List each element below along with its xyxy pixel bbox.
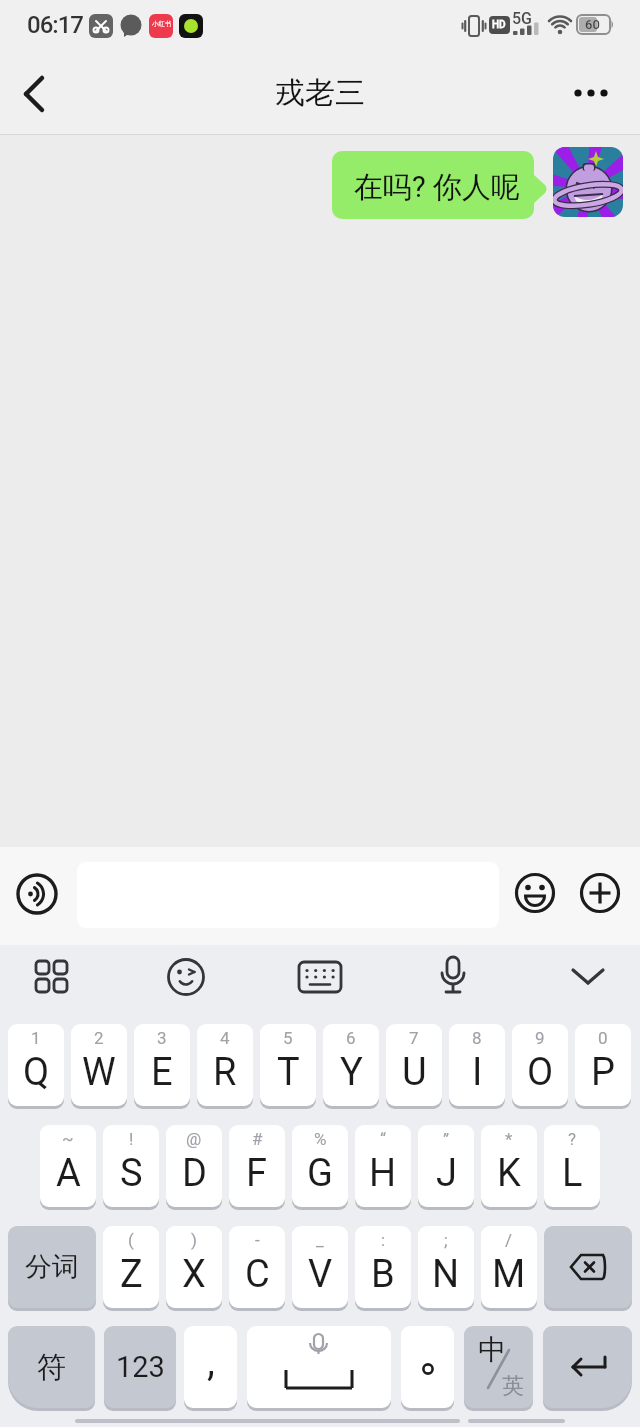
button[interactable]: ~ [40,1125,96,1207]
button[interactable]: % [292,1125,348,1207]
staticText: 06:17 [27,11,83,39]
staticText: 60 [585,17,600,32]
staticText: E [151,1050,173,1095]
button[interactable] [437,957,469,997]
staticText: O [527,1050,554,1095]
staticText: 2 [94,1028,104,1048]
button[interactable]: - [229,1226,285,1308]
button[interactable] [16,873,58,915]
staticText: 6 [346,1028,356,1048]
button[interactable]: * [481,1125,537,1207]
button[interactable] [401,1326,454,1408]
staticText: “ [380,1129,387,1149]
button[interactable]: 5 [260,1024,316,1106]
button[interactable]: 符 [8,1326,95,1408]
button[interactable]: 3 [134,1024,190,1106]
button[interactable]: # [229,1125,285,1207]
button[interactable] [570,80,614,106]
staticText: A [56,1151,81,1196]
staticText: 3 [157,1028,167,1048]
staticText: S [120,1151,143,1196]
button[interactable]: 戎老三 [275,74,365,112]
staticText: V [308,1252,333,1297]
staticText: D [182,1151,207,1196]
staticText: ! [129,1129,134,1149]
staticText: ” [443,1129,450,1149]
button[interactable]: ( [103,1226,159,1308]
button[interactable] [580,873,620,913]
staticText: 1 [31,1028,41,1048]
button[interactable] [299,962,341,992]
staticText: ~ [62,1129,74,1149]
button[interactable]: / [481,1226,537,1308]
button[interactable] [570,966,606,988]
staticText: 符 [37,1349,66,1386]
button[interactable]: : [355,1226,411,1308]
staticText: 5G [512,9,532,28]
button[interactable]: “ [355,1125,411,1207]
button[interactable]: _ [292,1226,348,1308]
staticText: 中 [478,1332,506,1367]
button[interactable]: 123 [104,1326,176,1408]
button[interactable]: 4 [197,1024,253,1106]
staticText: 123 [116,1350,165,1384]
staticText: P [591,1050,615,1095]
staticText: % [314,1129,327,1149]
staticText: ? [568,1129,577,1149]
staticText: U [402,1050,427,1095]
staticText: Y [340,1050,363,1095]
staticText: 9 [535,1028,545,1048]
staticText: G [307,1151,333,1196]
staticText: 7 [409,1028,419,1048]
button[interactable]: 8 [449,1024,505,1106]
button[interactable]: @ [166,1125,222,1207]
button[interactable] [515,873,555,913]
staticText: 小红书 [152,20,172,28]
button[interactable] [36,961,68,993]
staticText: I [472,1050,483,1095]
button[interactable]: , [184,1326,237,1408]
staticText: @ [186,1129,202,1149]
button[interactable]: ! [103,1125,159,1207]
button[interactable] [332,151,534,219]
button[interactable]: 中 [464,1326,533,1408]
button[interactable] [22,76,48,112]
staticText: : [381,1230,386,1250]
button[interactable] [553,147,623,217]
staticText: K [497,1151,521,1196]
staticText: - [255,1230,260,1250]
staticText: R [213,1050,237,1095]
staticText: Z [120,1252,143,1297]
button[interactable] [167,958,205,996]
staticText: 5 [283,1028,293,1048]
staticText: F [246,1151,268,1196]
staticText: L [562,1151,583,1196]
button[interactable]: ) [166,1226,222,1308]
button[interactable]: ? [544,1125,600,1207]
button[interactable]: 分词 [8,1226,96,1308]
staticText: _ [316,1230,324,1250]
staticText: 4 [220,1028,230,1048]
staticText: C [245,1252,270,1297]
button[interactable]: ; [418,1226,474,1308]
button[interactable]: 1 [8,1024,64,1106]
button[interactable] [247,1326,391,1408]
staticText: X [182,1252,206,1297]
button[interactable]: 2 [71,1024,127,1106]
button[interactable] [544,1226,632,1308]
button[interactable]: 7 [386,1024,442,1106]
button[interactable] [543,1326,632,1408]
staticText: Q [23,1050,50,1095]
staticText: ; [444,1230,448,1250]
staticText: 在吗? 你人呢 [354,169,520,206]
button[interactable]: 9 [512,1024,568,1106]
staticText: 0 [598,1028,608,1048]
staticText: 英 [502,1372,524,1400]
staticText: * [505,1129,513,1149]
staticText: # [252,1129,263,1149]
staticText: / [505,1230,513,1250]
button[interactable]: 0 [575,1024,631,1106]
button[interactable]: ” [418,1125,474,1207]
button[interactable]: 6 [323,1024,379,1106]
